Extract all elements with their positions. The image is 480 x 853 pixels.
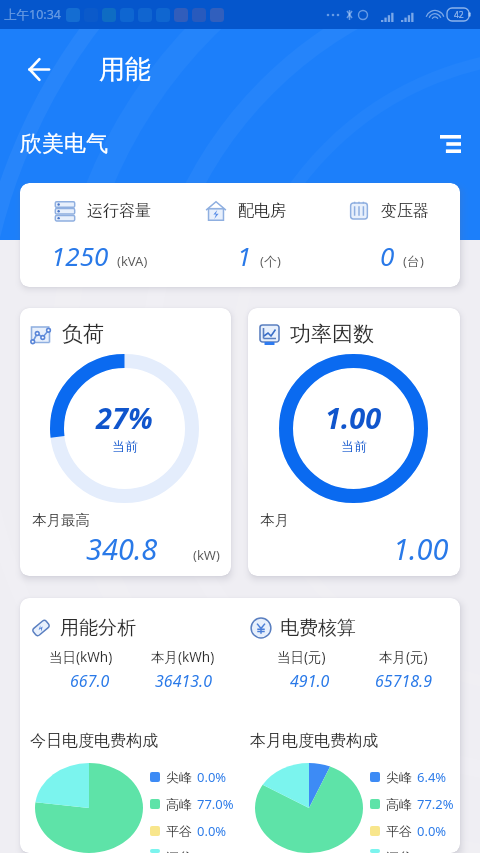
staticText: 平谷: [166, 823, 192, 839]
button[interactable]: 运行容量: [20, 183, 460, 287]
staticText: 尖峰: [166, 769, 192, 785]
staticText: 当前: [341, 438, 367, 454]
staticText: 1250: [51, 238, 109, 273]
staticText: 65718.9: [375, 670, 432, 692]
staticText: 当日(kWh): [49, 648, 113, 666]
button[interactable]: 用能分析: [20, 598, 460, 853]
staticText: 今日电度电费构成: [30, 731, 158, 751]
staticText: 77.2%: [417, 795, 454, 813]
staticText: 1.00: [393, 529, 449, 568]
staticText: 0.0%: [417, 822, 447, 840]
staticText: 0: [380, 238, 395, 273]
staticText: 用能: [99, 53, 151, 86]
staticText: 上午10:34: [4, 6, 61, 23]
staticText: 本月(kWh): [151, 648, 215, 666]
staticText: 340.8: [86, 529, 158, 568]
staticText: 高峰: [386, 796, 412, 812]
staticText: 本月电度电费构成: [250, 731, 378, 751]
staticText: 27%: [96, 398, 153, 437]
button[interactable]: 功率因数: [248, 308, 460, 576]
staticText: 本月: [260, 511, 289, 529]
staticText: 36413.0: [155, 670, 212, 692]
staticText: 用能分析: [60, 616, 136, 640]
staticText: 负荷: [62, 321, 104, 347]
staticText: 深谷: [386, 849, 412, 853]
button[interactable]: Menu: [432, 126, 468, 162]
staticText: 当日(元): [277, 648, 326, 666]
staticText: (kVA): [117, 252, 148, 270]
staticText: 功率因数: [290, 321, 374, 347]
staticText: 当前: [112, 438, 138, 454]
staticText: 本月最高: [32, 511, 90, 529]
staticText: 667.0: [70, 670, 110, 692]
staticText: 深谷: [166, 849, 192, 853]
staticText: 本月(元): [379, 648, 428, 666]
staticText: (个): [260, 252, 281, 270]
staticText: 电费核算: [280, 616, 356, 640]
staticText: 配电房: [238, 201, 286, 221]
staticText: 变压器: [381, 201, 429, 221]
staticText: 平谷: [386, 823, 412, 839]
staticText: 尖峰: [386, 769, 412, 785]
staticText: (台): [403, 252, 424, 270]
staticText: 欣美电气: [20, 130, 108, 158]
staticText: 42: [454, 9, 464, 21]
staticText: 运行容量: [87, 201, 151, 221]
staticText: 491.0: [290, 670, 330, 692]
staticText: 6.4%: [417, 768, 447, 786]
staticText: (kW): [193, 546, 220, 564]
button[interactable]: 负荷: [20, 308, 231, 576]
staticText: 16.4%: [417, 849, 454, 853]
button[interactable]: Back: [0, 43, 76, 95]
staticText: 0.0%: [197, 822, 227, 840]
staticText: 高峰: [166, 796, 192, 812]
staticText: 1.00: [325, 398, 382, 437]
staticText: 77.0%: [197, 795, 234, 813]
staticText: 0.0%: [197, 768, 227, 786]
staticText: 1: [237, 238, 252, 273]
